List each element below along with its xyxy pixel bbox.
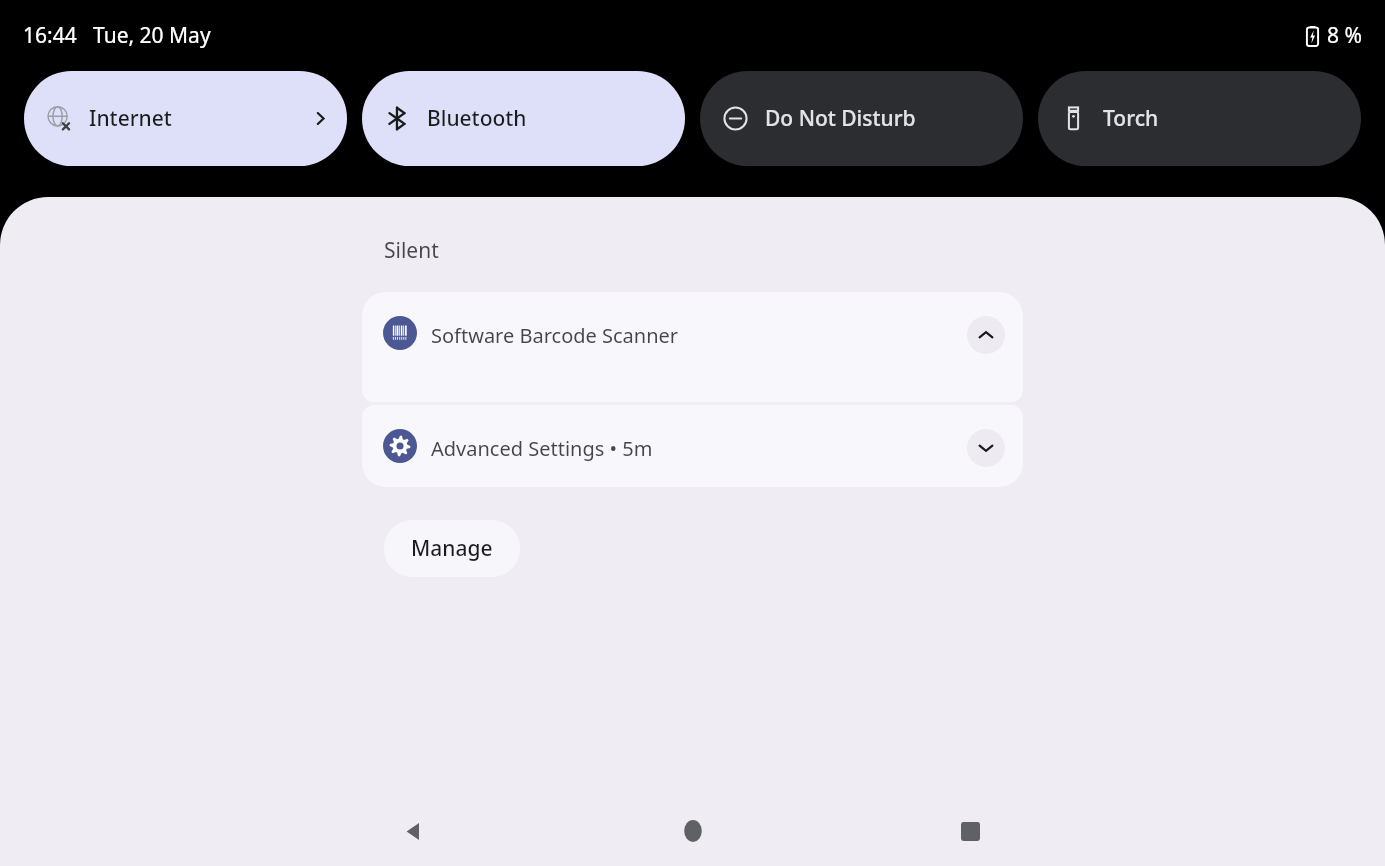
staticText: Silent [384, 236, 439, 265]
staticText: 8 % [1327, 21, 1362, 50]
button[interactable]: Internet [24, 71, 347, 166]
button[interactable]: Torch [1038, 71, 1361, 166]
staticText: Torch [1103, 104, 1159, 133]
button[interactable]: Manage [384, 520, 520, 577]
button[interactable]: Software Barcode Scanner [362, 292, 1023, 402]
staticText: Bluetooth [427, 104, 527, 133]
button[interactable]: Advanced Settings • 5m [362, 405, 1023, 487]
button[interactable]: Recent apps [945, 806, 995, 856]
button[interactable]: Bluetooth [362, 71, 685, 166]
button[interactable]: Back [388, 806, 438, 856]
button[interactable]: Home [668, 806, 718, 856]
staticText: 16:44 Tue, 20 May [23, 21, 211, 50]
staticText: Do Not Disturb [765, 104, 916, 133]
button[interactable]: Collapse [967, 316, 1005, 354]
button[interactable]: Expand [967, 429, 1005, 467]
staticText: Software Barcode Scanner [431, 322, 967, 349]
staticText: Internet [89, 104, 172, 133]
staticText: Manage [411, 534, 493, 563]
staticText: Advanced Settings • 5m [431, 435, 967, 462]
button[interactable]: Do Not Disturb [700, 71, 1023, 166]
